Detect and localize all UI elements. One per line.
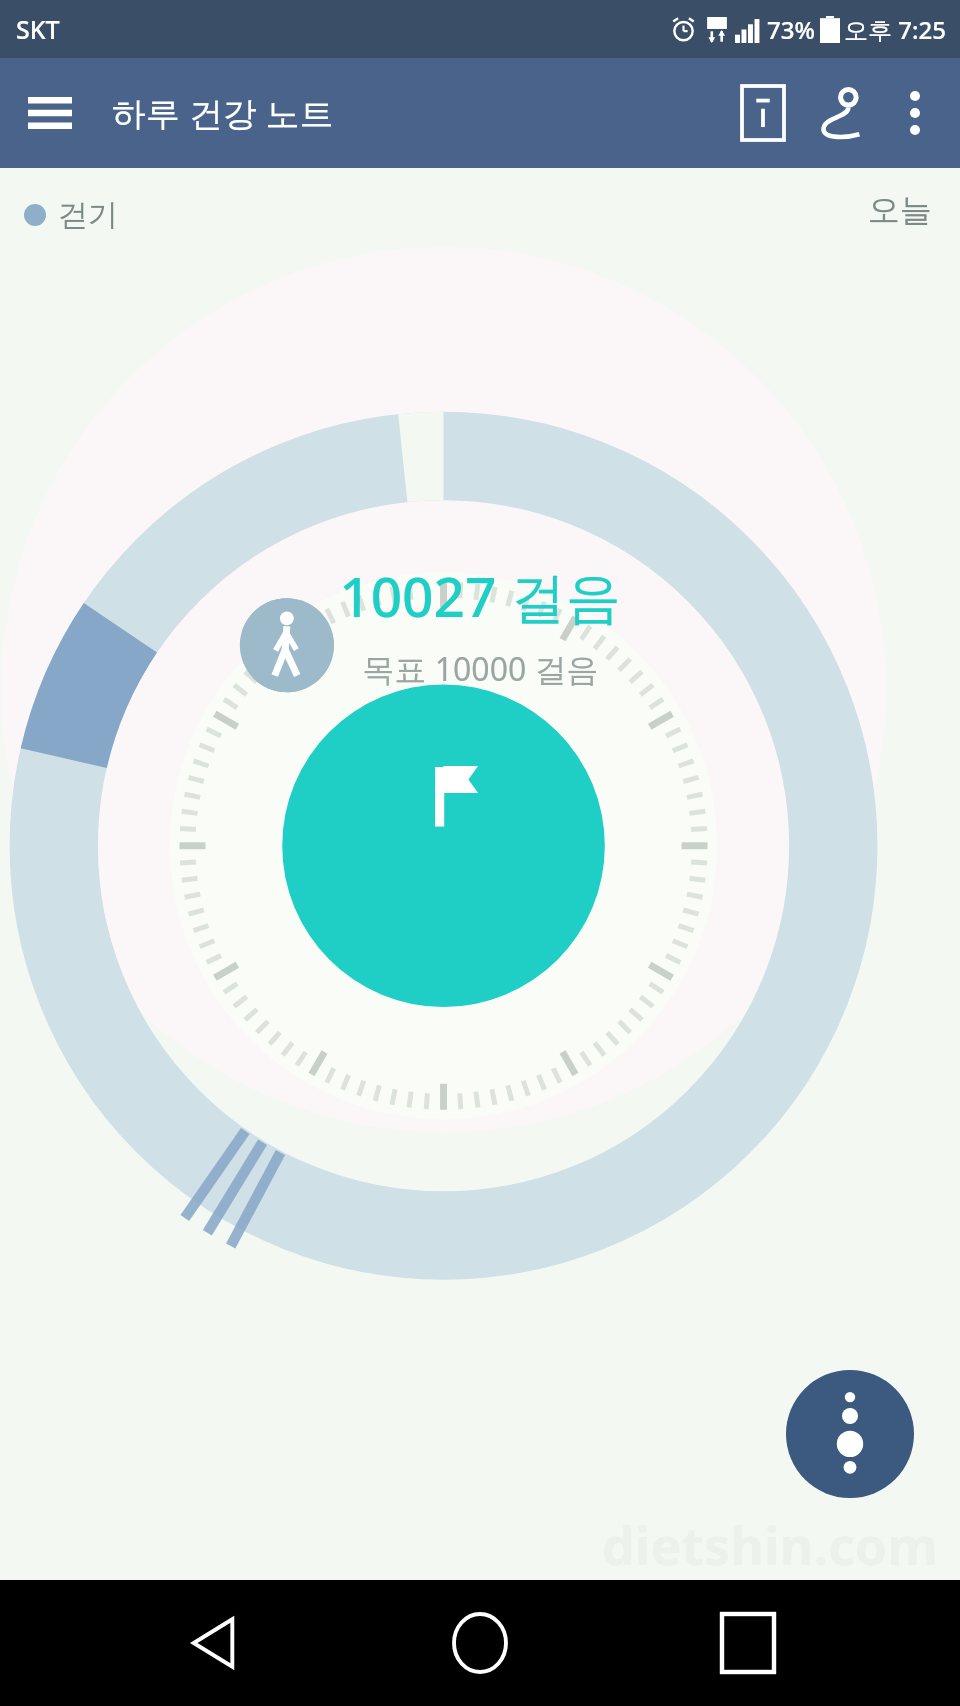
staticText: 10027 걸음 xyxy=(339,558,621,633)
staticText: 오후 7:25 xyxy=(844,13,946,46)
staticText: 걷기 xyxy=(58,196,118,234)
button[interactable]: Calendar xyxy=(724,74,802,152)
button[interactable]: Recent apps xyxy=(693,1588,803,1698)
staticText: 하루 건강 노트 xyxy=(112,90,334,136)
button[interactable]: 오늘 xyxy=(868,190,932,230)
button[interactable]: More options xyxy=(880,78,950,148)
button[interactable]: Route xyxy=(802,74,880,152)
button[interactable]: Menu xyxy=(22,85,78,141)
staticText: 목표 10000 걸음 xyxy=(362,647,599,691)
button[interactable]: 걷기 xyxy=(24,196,118,234)
staticText: 오늘 xyxy=(868,190,932,230)
button[interactable]: Home xyxy=(425,1588,535,1698)
button[interactable]: Back xyxy=(158,1588,268,1698)
staticText: SKT xyxy=(16,12,60,46)
staticText: 73% xyxy=(767,13,815,46)
button[interactable]: More actions xyxy=(786,1370,914,1498)
